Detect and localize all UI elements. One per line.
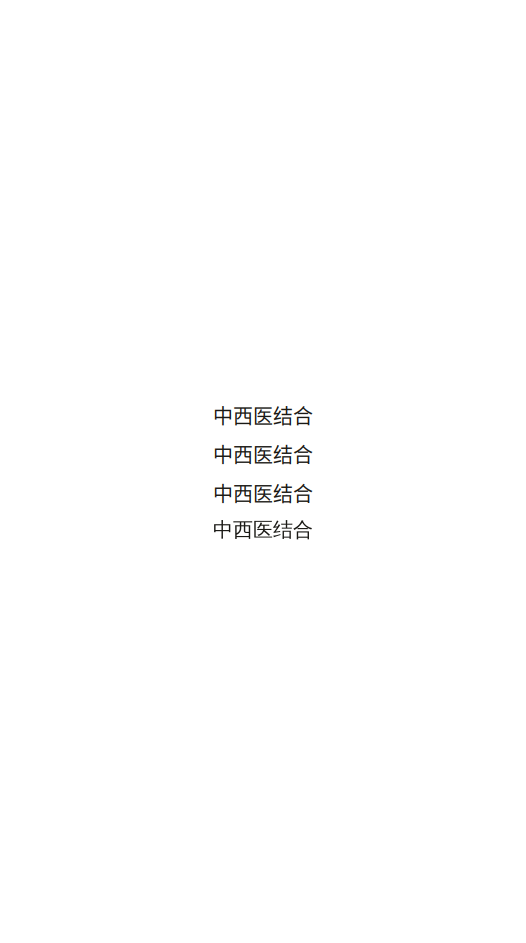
staticText: 中西医结合 <box>213 439 313 468</box>
staticText: 中西医结合 <box>213 517 313 542</box>
staticText: 中西医结合 <box>213 478 313 507</box>
staticText: 中西医结合 <box>213 400 313 429</box>
